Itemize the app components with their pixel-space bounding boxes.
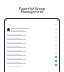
button[interactable] [7,55,57,59]
button[interactable] [7,31,57,35]
button[interactable] [7,47,57,51]
button[interactable] [7,59,57,63]
button[interactable] [7,23,57,26]
button[interactable] [7,35,57,39]
staticText: Powerful Group Management [0,6,64,14]
button[interactable] [7,63,57,67]
button[interactable] [7,43,57,47]
button[interactable] [7,39,57,43]
other: Group avatar [7,28,10,31]
button[interactable]: Group avatar [7,27,57,31]
button[interactable] [7,51,57,55]
